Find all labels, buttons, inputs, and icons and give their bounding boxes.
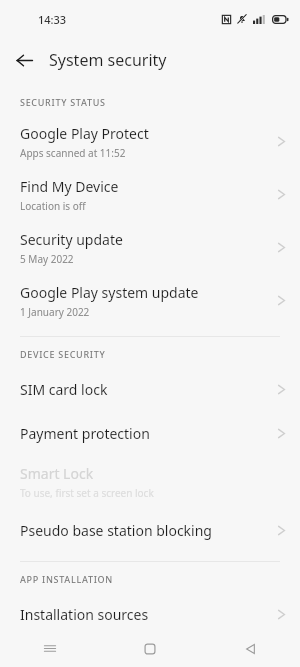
button[interactable]: Back: [7, 43, 41, 77]
button[interactable]: Recent apps: [0, 630, 100, 667]
staticText: Location is off: [20, 199, 86, 213]
staticText: Google Play Protect: [20, 124, 149, 143]
staticText: Pseudo base station blocking: [20, 521, 212, 540]
staticText: Apps scanned at 11:52: [20, 146, 126, 160]
button[interactable]: Back: [200, 630, 300, 667]
button[interactable]: Pseudo base station blocking: [0, 508, 300, 552]
button[interactable]: Payment protection: [0, 411, 300, 455]
staticText: System security: [49, 49, 167, 71]
staticText: Payment protection: [20, 424, 150, 443]
staticText: APP INSTALLATION: [20, 573, 114, 585]
staticText: Security update: [20, 230, 123, 249]
staticText: Installation sources: [20, 605, 149, 624]
button[interactable]: Installation sources: [0, 592, 300, 636]
button[interactable]: Google Play system update: [0, 274, 300, 327]
staticText: 14:33: [38, 12, 67, 27]
button[interactable]: Find My Device: [0, 168, 300, 221]
button: Smart Lock: [0, 455, 300, 508]
staticText: Find My Device: [20, 177, 119, 196]
staticText: Smart Lock: [20, 464, 94, 483]
button[interactable]: Home: [100, 630, 200, 667]
button[interactable]: Security update: [0, 221, 300, 274]
button[interactable]: Google Play Protect: [0, 115, 300, 168]
staticText: DEVICE SECURITY: [20, 348, 106, 360]
staticText: SIM card lock: [20, 380, 108, 399]
staticText: 5 May 2022: [20, 252, 74, 266]
staticText: To use, first set a screen lock: [20, 486, 154, 500]
staticText: SECURITY STATUS: [20, 96, 106, 108]
button[interactable]: SIM card lock: [0, 367, 300, 411]
staticText: Google Play system update: [20, 283, 199, 302]
staticText: 1 January 2022: [20, 305, 90, 319]
